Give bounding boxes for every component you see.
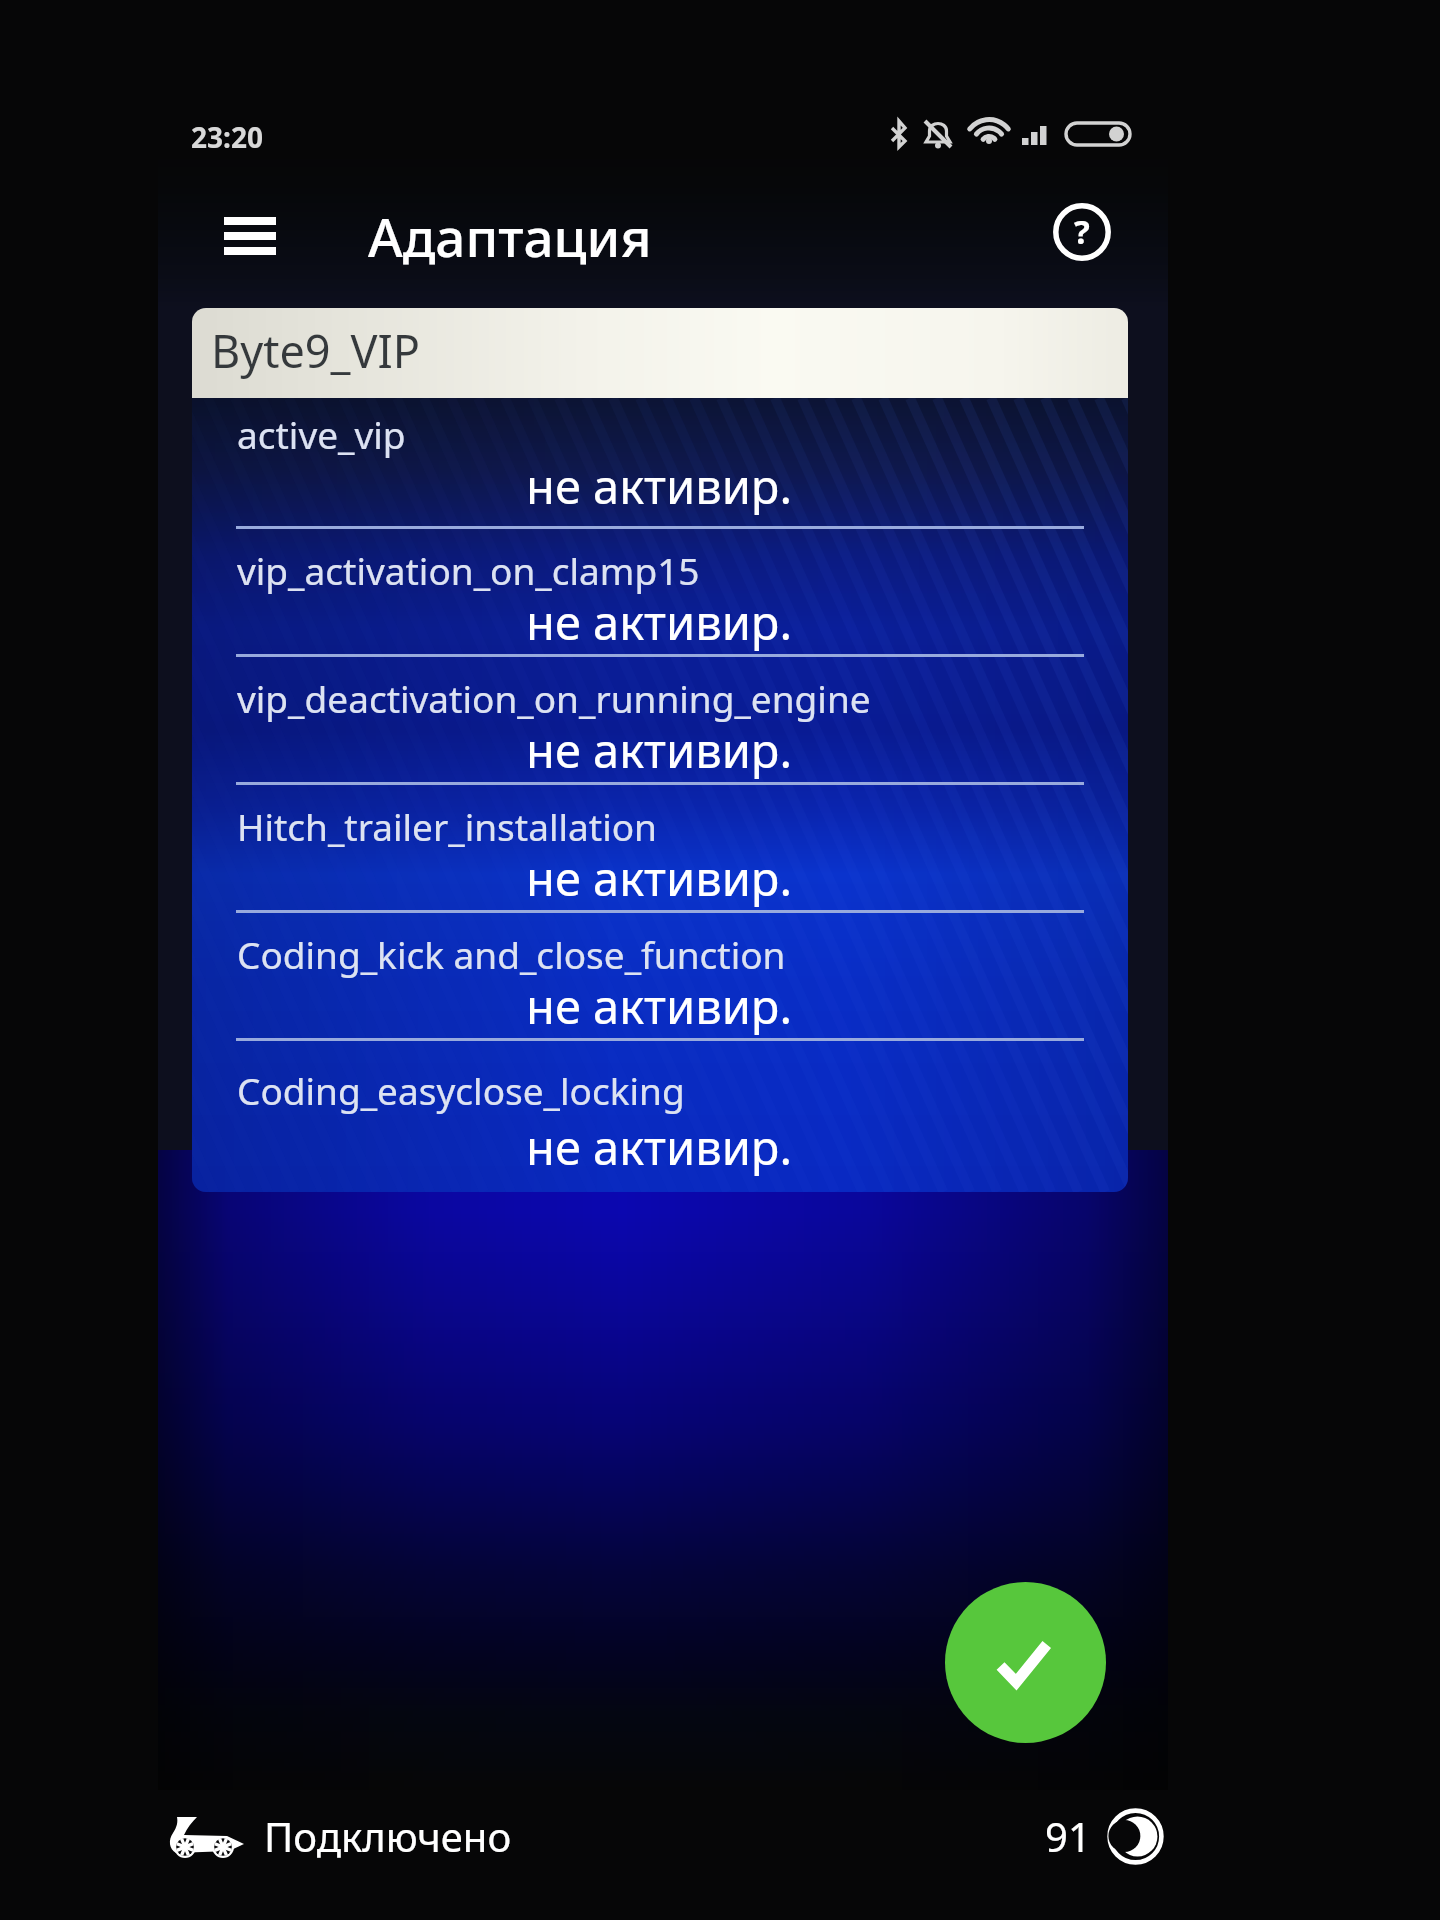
staticText: vip_deactivation_on_running_engine	[237, 673, 871, 723]
staticText: Hitch_trailer_installation	[237, 801, 657, 851]
staticText: не активир.	[192, 590, 792, 654]
staticText: Coding_kick and_close_function	[237, 929, 786, 979]
button[interactable]: Menu	[196, 190, 304, 282]
button[interactable]: Byte9_VIP	[192, 308, 1128, 398]
button[interactable]: Battery 91	[1045, 1795, 1195, 1877]
staticText: ?	[1074, 209, 1090, 254]
staticText: 23:20	[191, 118, 263, 156]
button[interactable]: vip_deactivation_on_running_engine	[192, 654, 1128, 782]
staticText: Byte9_VIP	[211, 320, 421, 381]
staticText: не активир.	[192, 1115, 792, 1179]
staticText: не активир.	[192, 846, 792, 910]
button[interactable]: Подключено	[166, 1795, 596, 1877]
button[interactable]: Help	[1036, 186, 1128, 278]
button[interactable]: vip_activation_on_clamp15	[192, 526, 1128, 654]
staticText: не активир.	[192, 974, 792, 1038]
button[interactable]: active_vip	[192, 398, 1128, 526]
button[interactable]: Apply	[945, 1582, 1106, 1743]
button[interactable]: Coding_kick and_close_function	[192, 910, 1128, 1038]
staticText: Подключено	[264, 1809, 512, 1863]
staticText: active_vip	[237, 409, 406, 459]
staticText: 91	[1045, 1809, 1091, 1863]
staticText: Coding_easyclose_locking	[237, 1065, 685, 1115]
staticText: vip_activation_on_clamp15	[237, 545, 700, 595]
staticText: Адаптация	[368, 200, 652, 272]
button[interactable]: Coding_easyclose_locking	[192, 1038, 1128, 1190]
staticText: не активир.	[192, 454, 792, 518]
staticText: не активир.	[192, 718, 792, 782]
button[interactable]: Hitch_trailer_installation	[192, 782, 1128, 910]
